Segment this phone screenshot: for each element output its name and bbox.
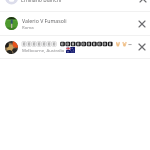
button[interactable]: Valerio V Fumasoli bbox=[0, 12, 150, 35]
button[interactable]: Dismiss bbox=[135, 40, 149, 54]
button[interactable]: Emiliano Bianchi bbox=[0, 0, 150, 11]
button[interactable]: Dismiss bbox=[135, 17, 149, 31]
staticText: Melbourne, Australia bbox=[22, 47, 65, 53]
button[interactable]: Melbourne, Australia bbox=[0, 36, 150, 58]
button[interactable]: Dismiss bbox=[136, 0, 150, 4]
staticText: Emiliano Bianchi bbox=[21, 0, 62, 3]
staticText: Valerio V Fumasoli bbox=[22, 17, 67, 24]
staticText: Roma bbox=[22, 24, 34, 30]
